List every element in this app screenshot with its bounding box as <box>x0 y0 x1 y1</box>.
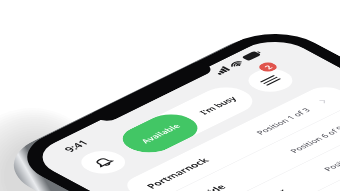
button[interactable]: Howth Harbour <box>186 119 340 191</box>
staticText: Position 1 of 3 <box>253 106 313 136</box>
staticText: Position 6 of 9 <box>287 124 340 154</box>
staticText: Portmarnock <box>143 156 212 190</box>
staticText: Howth Harbour <box>211 187 290 191</box>
button[interactable]: Notifications <box>72 146 134 178</box>
button[interactable]: I'm busy <box>172 82 263 129</box>
button[interactable]: Portmarnock <box>118 83 340 191</box>
staticText: Position 2 of 5 <box>321 143 340 172</box>
button[interactable]: Available <box>111 109 208 158</box>
staticText: I'm busy <box>196 94 239 116</box>
staticText: 2 <box>261 63 276 71</box>
button[interactable]: Malahide <box>152 101 340 191</box>
button[interactable]: Baldoyle <box>253 155 340 191</box>
staticText: Malahide <box>177 182 229 191</box>
staticText: Available <box>138 122 183 145</box>
staticText: 9:41 <box>60 138 92 154</box>
button[interactable]: Menu <box>239 64 301 96</box>
button[interactable]: Sutton Cross <box>220 137 340 191</box>
